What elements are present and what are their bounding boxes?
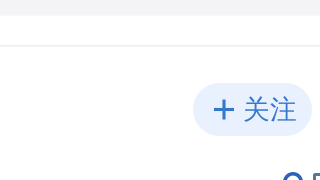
button[interactable]: 关注 [193, 83, 312, 136]
staticText: 关注 [243, 93, 297, 126]
button[interactable] [283, 172, 320, 180]
